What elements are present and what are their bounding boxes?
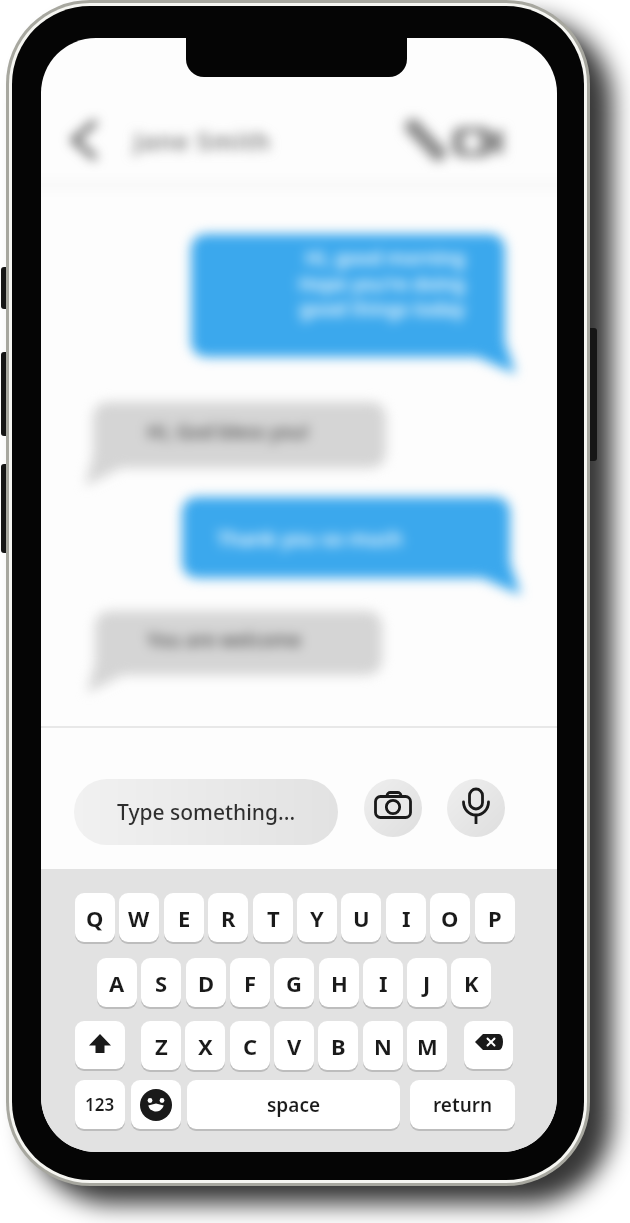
staticText: Z — [155, 1031, 168, 1061]
staticText: N — [374, 1031, 392, 1061]
button[interactable]: O — [430, 893, 470, 942]
staticText: Type something... — [117, 798, 296, 827]
button[interactable]: W — [119, 893, 159, 942]
staticText: W — [128, 903, 150, 933]
staticText: Thank you so much — [217, 525, 403, 552]
staticText: I — [379, 968, 388, 998]
button[interactable]: N — [363, 1021, 403, 1070]
staticText: V — [287, 1031, 302, 1061]
button[interactable]: P — [475, 893, 515, 942]
staticText: H — [331, 968, 348, 998]
button[interactable] — [61, 113, 111, 168]
staticText: You are welcome — [147, 627, 302, 653]
button[interactable]: return — [410, 1080, 515, 1129]
button[interactable]: T — [253, 893, 293, 942]
button[interactable] — [464, 1021, 513, 1069]
button[interactable]: K — [451, 958, 491, 1007]
staticText: I — [402, 903, 411, 933]
staticText: J — [423, 968, 431, 998]
staticText: B — [331, 1031, 346, 1061]
button[interactable]: M — [407, 1021, 447, 1070]
staticText: return — [433, 1092, 493, 1118]
staticText: R — [221, 903, 236, 933]
button[interactable] — [75, 1021, 125, 1069]
button[interactable]: U — [341, 893, 381, 942]
staticText: 123 — [85, 1093, 115, 1116]
staticText: Hi, God bless you! — [147, 419, 309, 445]
button[interactable] — [396, 113, 456, 173]
button[interactable] — [131, 1080, 181, 1129]
staticText: M — [417, 1031, 438, 1061]
button[interactable]: H — [319, 958, 359, 1007]
button[interactable]: J — [407, 958, 447, 1007]
button[interactable]: Y — [297, 893, 337, 942]
button[interactable]: G — [274, 958, 314, 1007]
button[interactable]: I — [386, 893, 426, 942]
staticText: Q — [86, 903, 104, 933]
staticText: F — [244, 968, 257, 998]
staticText: O — [441, 903, 459, 933]
button[interactable]: B — [318, 1021, 358, 1070]
staticText: S — [155, 968, 168, 998]
button[interactable]: space — [187, 1080, 400, 1129]
button[interactable]: C — [230, 1021, 270, 1070]
button[interactable]: Q — [75, 893, 115, 942]
staticText: Jane Smith — [134, 124, 272, 157]
button[interactable]: Z — [141, 1021, 181, 1070]
button[interactable]: X — [185, 1021, 225, 1070]
staticText: G — [286, 968, 302, 998]
button[interactable] — [449, 123, 509, 163]
button[interactable]: V — [274, 1021, 314, 1070]
staticText: Y — [310, 903, 324, 933]
staticText: A — [109, 968, 125, 998]
button[interactable]: Type something... — [74, 779, 338, 845]
staticText: space — [267, 1092, 321, 1118]
button[interactable]: A — [97, 958, 137, 1007]
staticText: E — [178, 903, 191, 933]
staticText: C — [243, 1031, 258, 1061]
staticText: K — [464, 968, 479, 998]
button[interactable]: S — [141, 958, 181, 1007]
button[interactable] — [364, 779, 422, 837]
button[interactable]: E — [164, 893, 204, 942]
staticText: P — [488, 903, 502, 933]
button[interactable]: Jane Smith — [134, 124, 272, 157]
staticText: D — [198, 968, 215, 998]
button[interactable] — [447, 779, 505, 837]
staticText: Hi, good morning Hope you're doing good … — [191, 245, 465, 1152]
button[interactable]: R — [208, 893, 248, 942]
button[interactable]: 123 — [75, 1080, 125, 1129]
staticText: U — [353, 903, 370, 933]
button[interactable]: I — [363, 958, 403, 1007]
staticText: T — [267, 903, 280, 933]
staticText: X — [198, 1031, 213, 1061]
button[interactable]: D — [186, 958, 226, 1007]
button[interactable]: F — [230, 958, 270, 1007]
